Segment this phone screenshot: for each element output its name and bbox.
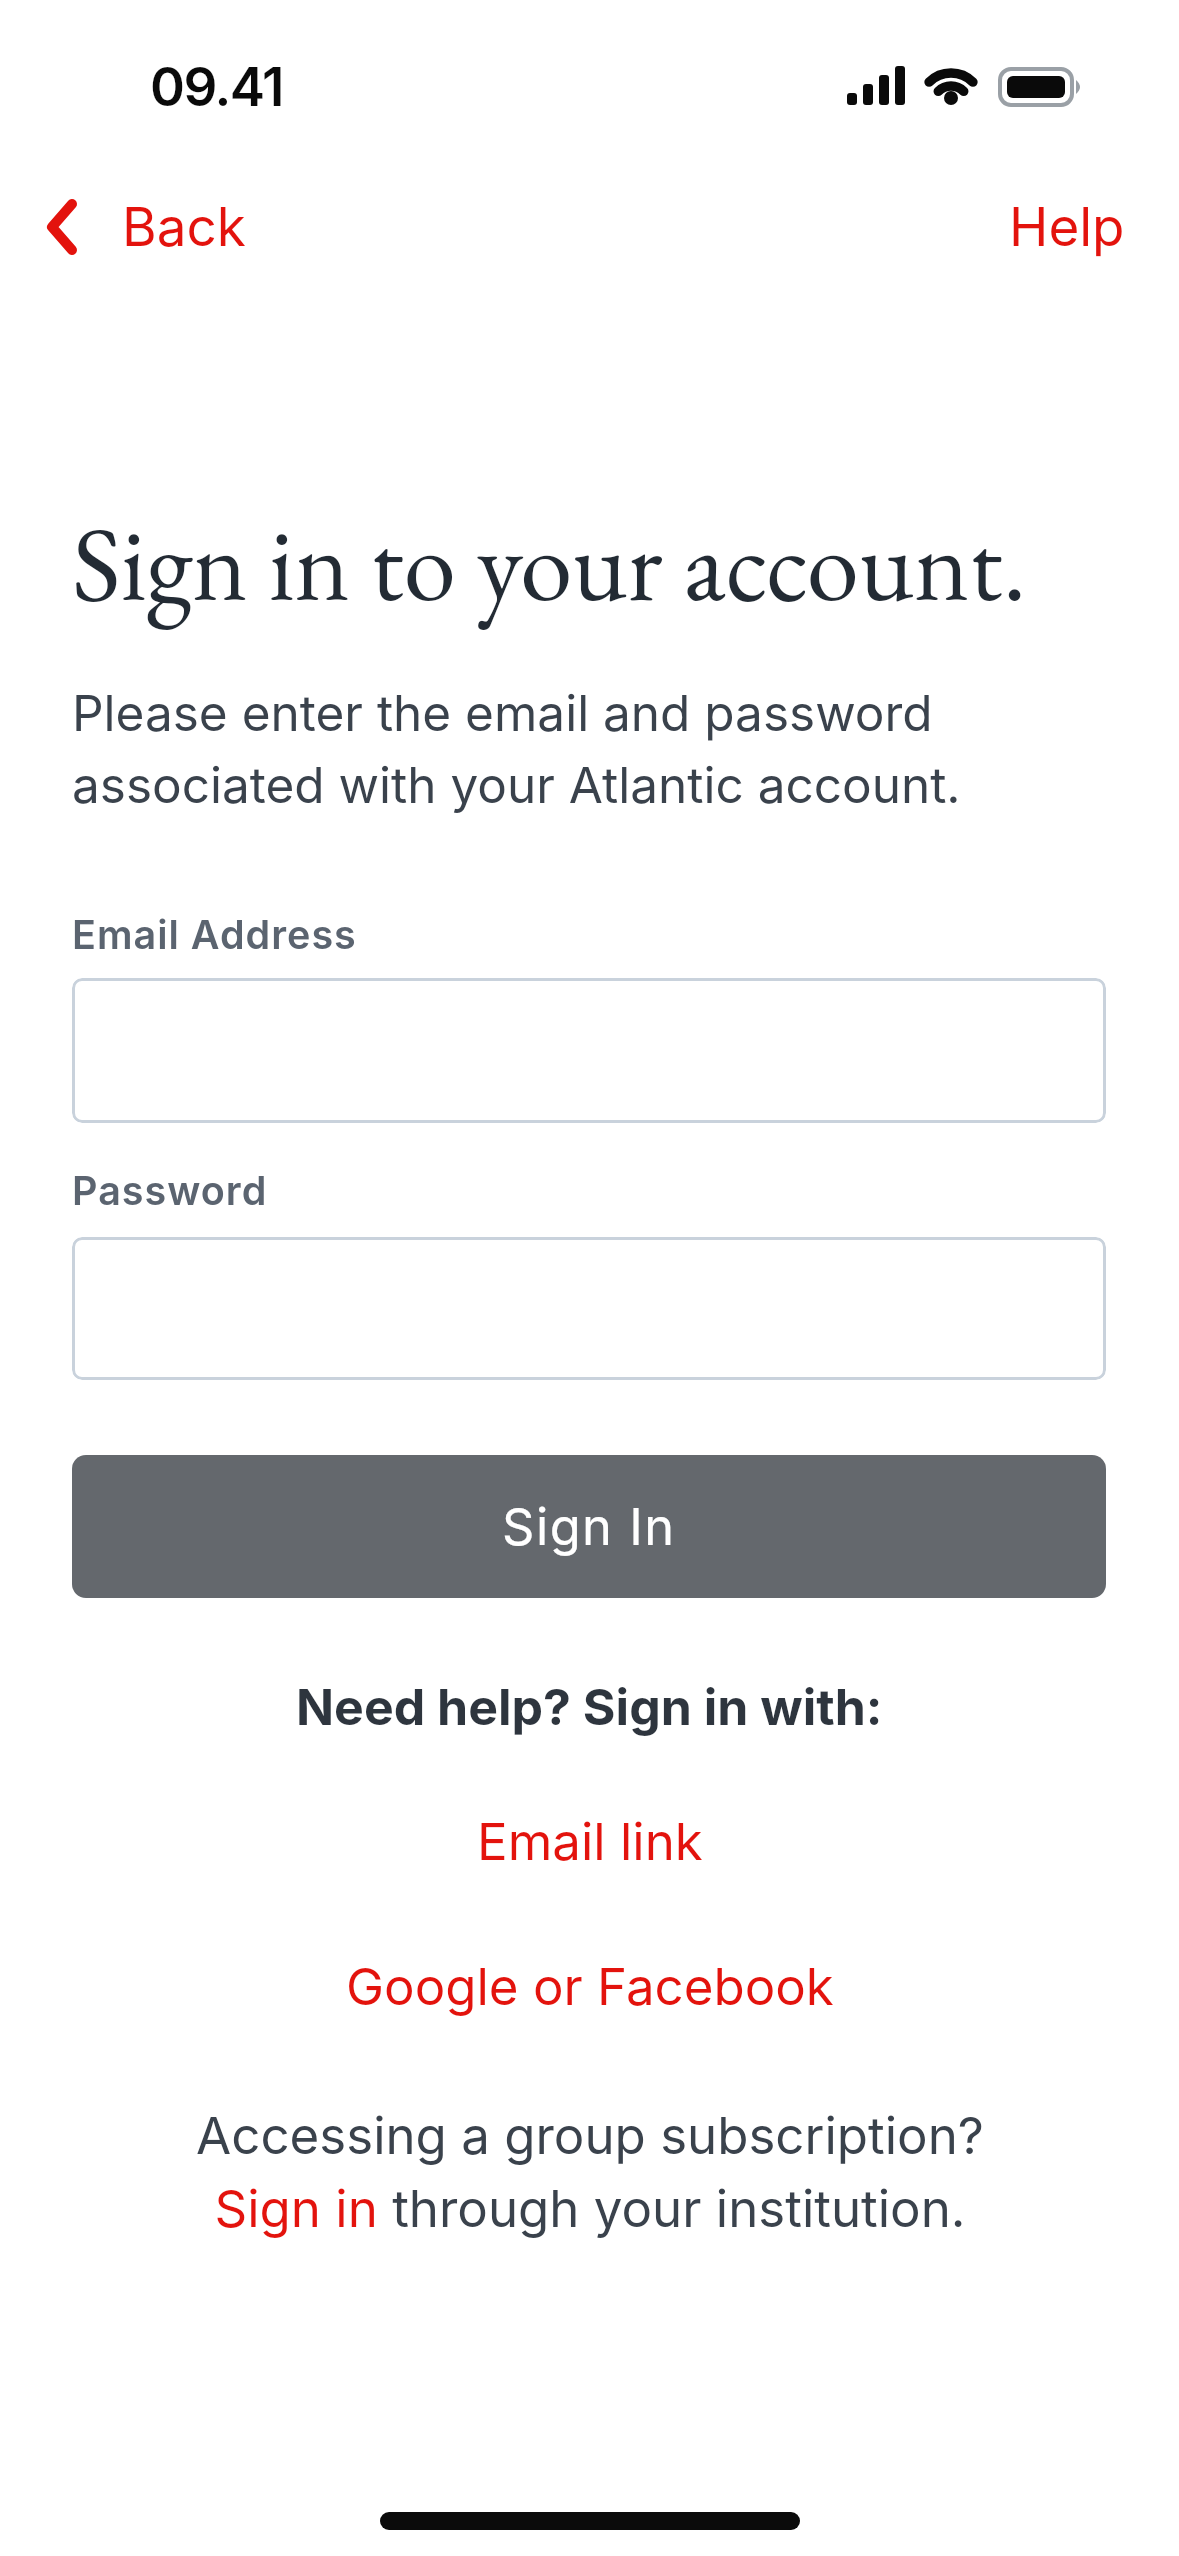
staticText: Need help? Sign in with: xyxy=(296,1677,883,1737)
button[interactable]: Help xyxy=(1009,195,1125,259)
staticText: Password xyxy=(72,1167,268,1215)
staticText: Please enter the email and password asso… xyxy=(72,683,961,815)
button[interactable]: Accessing a group subscription? Sign in … xyxy=(196,2105,984,2239)
button[interactable]: Sign In xyxy=(72,1455,1106,1598)
staticText: Google or Facebook xyxy=(346,1956,834,2018)
staticText: Back xyxy=(122,195,246,259)
button[interactable]: Back xyxy=(0,195,246,259)
button[interactable]: Google or Facebook xyxy=(346,1956,834,2018)
staticText: Email Address xyxy=(72,911,357,959)
staticText: Email link xyxy=(477,1811,703,1873)
staticText: Sign In xyxy=(502,1496,676,1557)
button[interactable] xyxy=(72,978,1106,1123)
staticText: 09.41 xyxy=(150,55,283,119)
staticText: Accessing a group subscription? Sign in … xyxy=(196,2105,984,2239)
staticText: Sign in to your account. xyxy=(72,494,1027,631)
button[interactable] xyxy=(72,1237,1106,1380)
button[interactable]: Email link xyxy=(477,1811,703,1873)
